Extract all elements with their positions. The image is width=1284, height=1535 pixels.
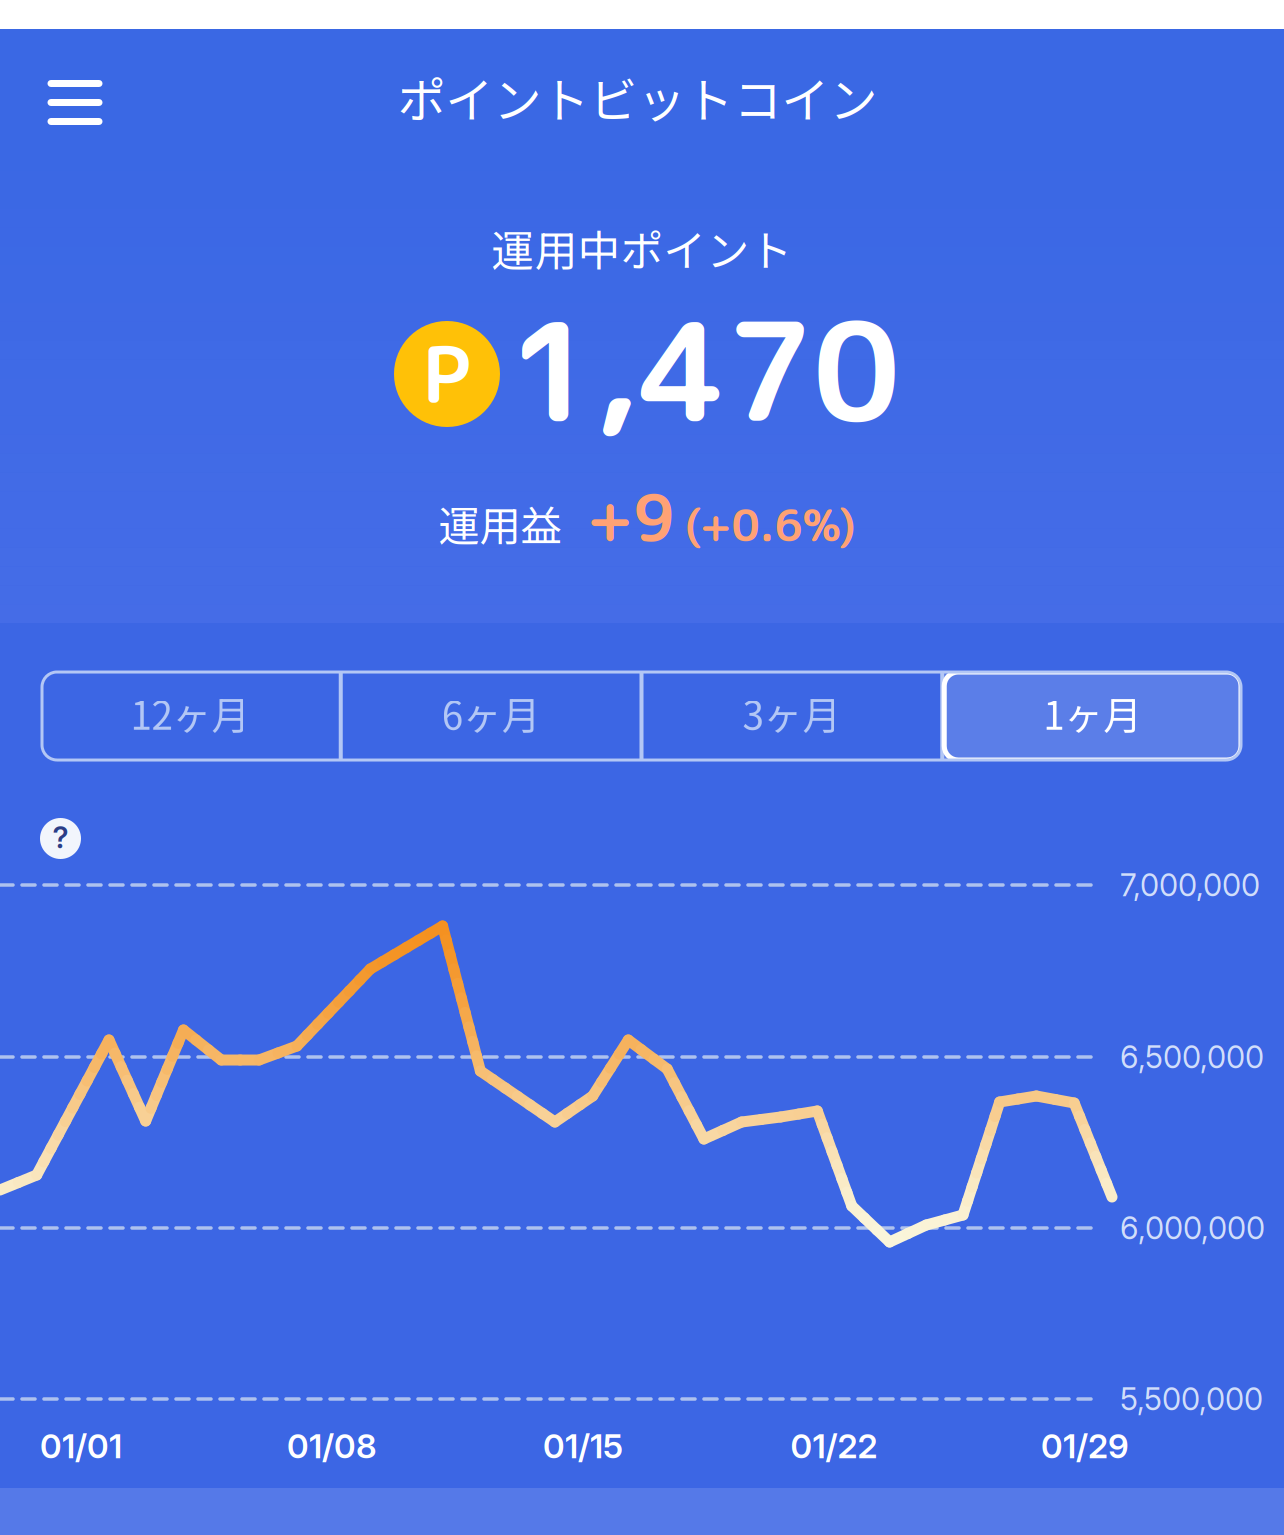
staticText: 01/01 [40, 1426, 122, 1466]
staticText: P [422, 320, 471, 428]
staticText: (+0.6%) [684, 494, 855, 555]
button[interactable]: 6ヶ月 [343, 672, 640, 760]
staticText: 01/22 [790, 1426, 877, 1466]
staticText: 1,470 [508, 275, 900, 465]
staticText: 6ヶ月 [442, 685, 541, 741]
staticText: +9 [586, 472, 674, 562]
button[interactable]: Help [40, 818, 81, 859]
staticText: 運用益 [438, 493, 561, 553]
staticText: 1ヶ月 [1043, 685, 1142, 741]
staticText: 運用中ポイント [491, 217, 792, 279]
button[interactable]: Menu [20, 55, 130, 150]
staticText: 01/08 [287, 1426, 377, 1466]
button[interactable]: 3ヶ月 [643, 672, 940, 760]
staticText: 6,500,000 [1120, 1038, 1264, 1075]
staticText: ? [52, 820, 68, 855]
staticText: 6,000,000 [1120, 1209, 1265, 1246]
staticText: 01/29 [1041, 1426, 1129, 1466]
staticText: 01/15 [543, 1426, 623, 1466]
button[interactable]: 12ヶ月 [42, 672, 339, 760]
staticText: 12ヶ月 [130, 685, 250, 741]
staticText: 7,000,000 [1120, 866, 1260, 903]
button[interactable]: 1ヶ月 [944, 672, 1241, 760]
staticText: ポイントビットコイン [397, 62, 877, 132]
staticText: 5,500,000 [1120, 1380, 1263, 1417]
staticText: 3ヶ月 [742, 685, 841, 741]
